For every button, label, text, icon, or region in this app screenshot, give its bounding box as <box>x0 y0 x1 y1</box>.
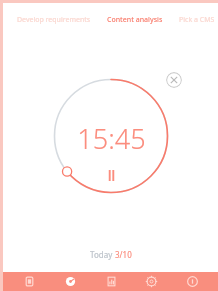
staticText: 15:45 <box>77 120 146 157</box>
staticText: Content analysis <box>107 15 163 25</box>
button[interactable]: Settings <box>136 272 166 291</box>
staticText: Today <box>90 249 115 260</box>
staticText: 3/10 <box>115 249 132 260</box>
button[interactable]: Timer dial <box>49 74 173 198</box>
staticText: Develop requirements <box>17 15 91 25</box>
button[interactable]: Statistics <box>96 272 126 291</box>
button[interactable]: Pause <box>100 167 122 183</box>
button[interactable]: Tasks <box>14 272 44 291</box>
button[interactable]: Pick a CMS <box>178 12 216 28</box>
staticText: Pick a CMS <box>179 15 215 25</box>
button[interactable]: Content analysis <box>106 12 164 28</box>
button[interactable]: Info <box>177 272 207 291</box>
button[interactable]: Timer <box>55 272 85 291</box>
button[interactable]: Close <box>166 72 182 88</box>
button[interactable]: Develop requirements <box>16 12 92 28</box>
